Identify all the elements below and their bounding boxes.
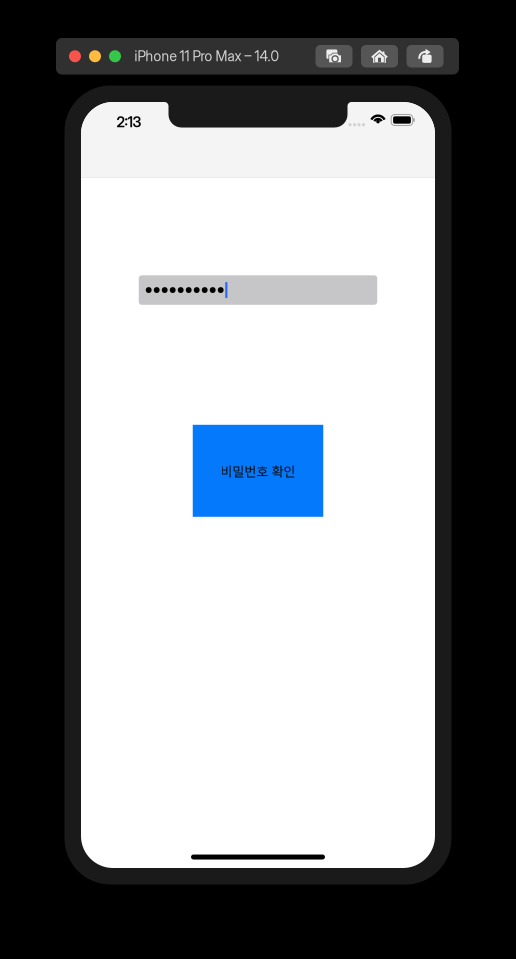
button[interactable]: Close	[69, 50, 81, 62]
button[interactable]: Share	[406, 45, 443, 67]
button[interactable]: Minimize	[89, 50, 101, 62]
button[interactable]: Zoom	[109, 50, 121, 62]
button[interactable]: 비밀번호 확인	[193, 425, 323, 517]
staticText: iPhone 11 Pro Max – 14.0	[134, 48, 279, 65]
button[interactable]: Home	[361, 45, 398, 67]
staticText: 2:13	[116, 113, 141, 131]
button[interactable]: Screenshot	[315, 45, 352, 67]
button[interactable]	[139, 275, 377, 305]
staticText: 비밀번호 확인	[220, 461, 295, 480]
